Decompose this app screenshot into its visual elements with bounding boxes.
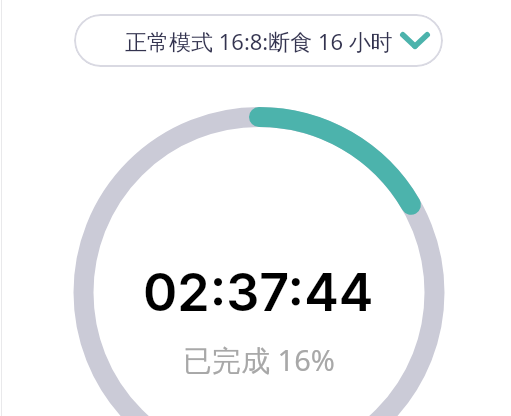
other: Expand fasting mode — [400, 32, 430, 49]
staticText: 正常模式 16:8:断食 16 小时 — [125, 26, 393, 56]
staticText: 已完成 16% — [183, 340, 335, 380]
staticText: 02:37:44 — [143, 261, 374, 324]
button[interactable]: 正常模式 16:8:断食 16 小时 — [74, 14, 443, 67]
